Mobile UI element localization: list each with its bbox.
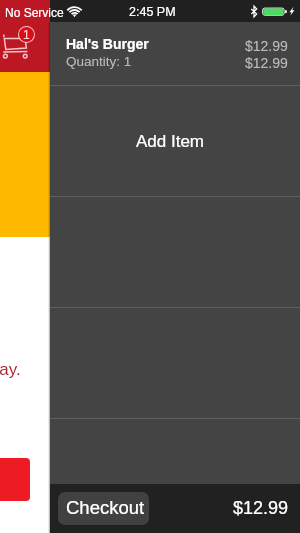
staticText: Checkout <box>66 497 145 518</box>
staticText: No Service <box>5 6 64 19</box>
staticText: Pay. <box>0 360 21 379</box>
staticText: $12.99 <box>245 38 288 54</box>
button[interactable]: Checkout <box>58 492 149 525</box>
staticText: $12.99 <box>245 55 288 71</box>
button[interactable]: Order now <box>0 458 30 501</box>
staticText: Quantity: 1 <box>66 54 132 69</box>
staticText: Add Item <box>136 132 205 151</box>
button[interactable]: Cart <box>0 24 36 60</box>
button[interactable]: Hal's Burger <box>50 22 300 85</box>
staticText: $12.99 <box>233 498 289 518</box>
button[interactable]: Add Item <box>50 86 300 196</box>
staticText: 1 <box>23 28 30 41</box>
staticText: 2:45 PM <box>129 5 176 19</box>
staticText: Hal's Burger <box>66 36 149 52</box>
